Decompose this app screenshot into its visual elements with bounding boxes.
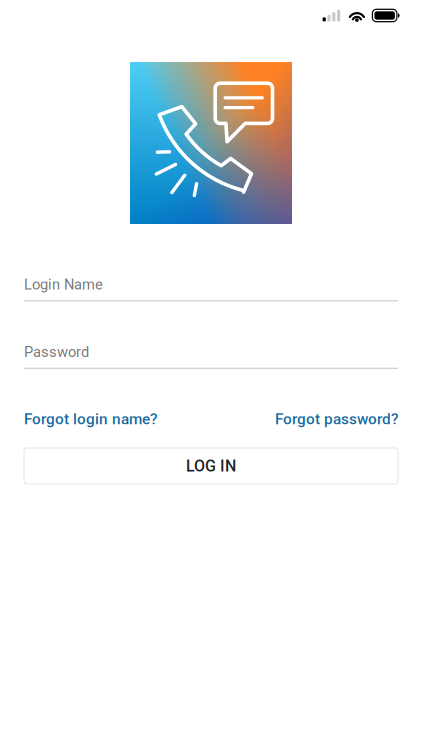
staticText: Forgot login name? [24,410,157,428]
staticText: Forgot password? [275,410,398,428]
staticText: LOG IN [186,457,236,475]
staticText: Password [24,343,89,361]
staticText: Login Name [24,276,103,293]
button[interactable]: LOG IN [24,448,398,484]
button[interactable]: Forgot password? [275,410,398,428]
button[interactable]: Forgot login name? [24,410,157,428]
